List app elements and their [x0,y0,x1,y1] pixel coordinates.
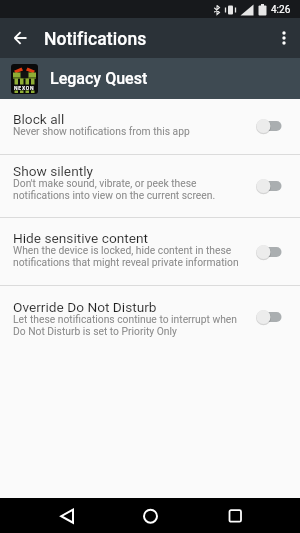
staticText: Legacy Quest [50,69,148,88]
button[interactable] [8,26,32,50]
button[interactable] [256,309,282,325]
staticText: NEXON [14,85,35,91]
staticText: 4:26 [271,4,291,16]
button[interactable]: Hide sensitive content [0,218,300,285]
button[interactable] [108,498,193,533]
staticText: Never show notifications from this app [13,125,190,137]
button[interactable] [256,244,282,260]
button[interactable]: Show silently [0,155,300,217]
button[interactable] [274,28,294,48]
staticText: When the device is locked, hide content … [13,244,239,268]
staticText: Block all [13,111,65,127]
button[interactable] [256,118,282,134]
button[interactable] [193,498,278,533]
staticText: Don't make sound, vibrate, or peek these… [13,177,216,201]
button[interactable]: Override Do Not Disturb [0,286,300,348]
staticText: Let these notifications continue to inte… [13,313,238,337]
button[interactable]: Block all [0,99,300,154]
staticText: Show silently [13,163,93,179]
button[interactable]: NEXON [0,58,300,99]
button[interactable] [23,498,108,533]
staticText: Hide sensitive content [13,230,149,246]
button[interactable] [256,178,282,194]
staticText: Notifications [44,29,147,50]
staticText: Override Do Not Disturb [13,299,157,315]
